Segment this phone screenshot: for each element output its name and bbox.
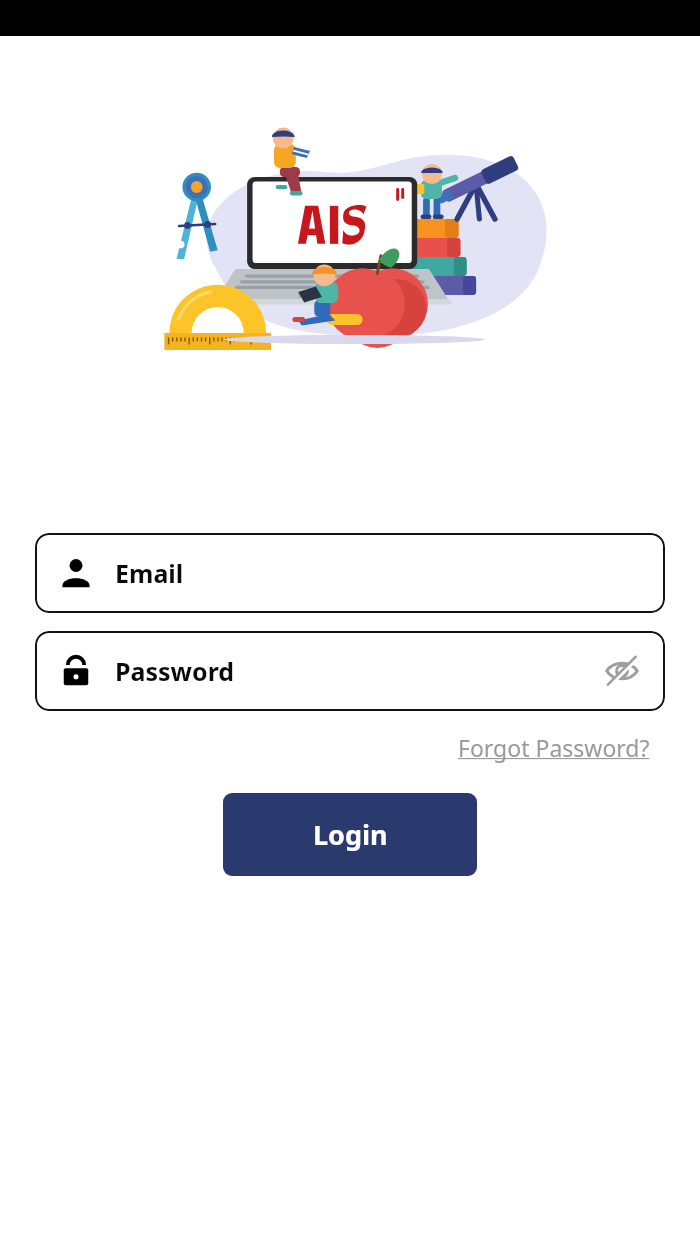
staticText: Password — [115, 654, 235, 688]
staticText: Login — [313, 816, 388, 853]
button[interactable]: Show password — [599, 648, 645, 694]
button[interactable]: Email — [35, 533, 665, 613]
button[interactable]: Forgot Password? — [452, 728, 656, 767]
button[interactable]: Login — [223, 793, 477, 876]
staticText: Email — [115, 556, 184, 590]
staticText: Forgot Password? — [458, 732, 650, 763]
button[interactable]: Password — [35, 631, 665, 711]
